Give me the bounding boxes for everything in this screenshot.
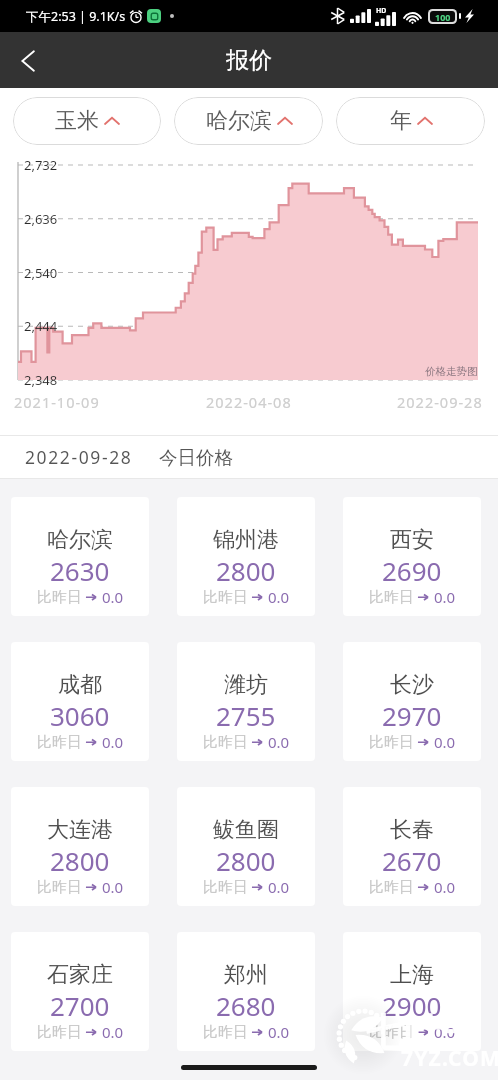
button[interactable]: 年 [336, 97, 485, 145]
staticText: 2700 [50, 988, 110, 1023]
button[interactable]: 成都 [11, 642, 149, 761]
staticText: 2680 [216, 988, 276, 1023]
staticText: 0.0 [268, 587, 290, 607]
staticText: 2,540 [24, 264, 58, 282]
staticText: 2690 [382, 553, 442, 588]
staticText: 2630 [50, 553, 110, 588]
staticText: 价格走势图 [425, 365, 478, 378]
button[interactable]: 西安 [343, 497, 481, 616]
staticText: 0.0 [434, 877, 456, 897]
staticText: 0.0 [434, 1022, 456, 1042]
staticText: 2670 [382, 843, 442, 878]
staticText: HD [376, 6, 387, 16]
button[interactable]: 哈尔滨 [174, 97, 323, 145]
staticText: 比昨日 [203, 878, 248, 897]
staticText: 哈尔滨 [47, 526, 113, 554]
button[interactable]: 石家庄 [11, 932, 149, 1051]
staticText: 0.0 [102, 732, 124, 752]
button[interactable]: 上海 [343, 932, 481, 1051]
staticText: 比昨日 [37, 878, 82, 897]
button[interactable]: 长春 [343, 787, 481, 906]
staticText: 2970 [382, 698, 442, 733]
staticText: 7YZ.COM [401, 1044, 498, 1073]
staticText: 比昨日 [37, 588, 82, 607]
staticText: 0.0 [268, 877, 290, 897]
staticText: 年 [390, 107, 412, 135]
staticText: 今日价格 [159, 446, 233, 469]
button[interactable]: 长沙 [343, 642, 481, 761]
staticText: 2022-09-28 [25, 445, 133, 469]
button[interactable]: 鲅鱼圈 [177, 787, 315, 906]
staticText: 比昨日 [369, 1023, 414, 1042]
staticText: 哈尔滨 [206, 107, 272, 135]
staticText: 比昨日 [203, 733, 248, 752]
button[interactable]: 玉米 [13, 97, 161, 145]
staticText: 比昨日 [203, 588, 248, 607]
staticText: 比昨日 [37, 733, 82, 752]
staticText: 报价 [226, 46, 272, 75]
staticText: 锦州港 [213, 526, 279, 554]
staticText: 2022-09-28 [397, 392, 483, 412]
staticText: 七叶子 [366, 1009, 480, 1057]
staticText: 西安 [390, 526, 434, 554]
staticText: 长春 [390, 816, 434, 844]
staticText: 2800 [50, 843, 110, 878]
staticText: 0.0 [434, 587, 456, 607]
staticText: 2755 [216, 698, 276, 733]
staticText: 比昨日 [37, 1023, 82, 1042]
staticText: 比昨日 [203, 1023, 248, 1042]
staticText: 郑州 [224, 961, 268, 989]
button[interactable]: 大连港 [11, 787, 149, 906]
staticText: 0.0 [102, 587, 124, 607]
staticText: 2022-04-08 [206, 392, 292, 412]
staticText: 0.0 [102, 1022, 124, 1042]
staticText: 2021-10-09 [14, 392, 100, 412]
button[interactable]: Back [0, 33, 55, 88]
staticText: 0.0 [268, 1022, 290, 1042]
staticText: 100 [435, 11, 451, 23]
staticText: 2900 [382, 988, 442, 1023]
staticText: 大连港 [47, 816, 113, 844]
staticText: 比昨日 [369, 733, 414, 752]
staticText: 下午2:53 | 9.1K/s [26, 8, 126, 25]
staticText: 潍坊 [224, 671, 268, 699]
staticText: 2,732 [24, 156, 58, 174]
staticText: 比昨日 [369, 588, 414, 607]
staticText: 3060 [50, 698, 110, 733]
staticText: 鲅鱼圈 [213, 816, 279, 844]
staticText: 长沙 [390, 671, 434, 699]
staticText: 玉米 [55, 107, 99, 135]
staticText: 2,636 [24, 210, 58, 228]
staticText: 成都 [58, 671, 102, 699]
button[interactable]: 锦州港 [177, 497, 315, 616]
staticText: 0.0 [434, 732, 456, 752]
staticText: 2800 [216, 843, 276, 878]
button[interactable]: 哈尔滨 [11, 497, 149, 616]
staticText: 0.0 [102, 877, 124, 897]
button[interactable]: 郑州 [177, 932, 315, 1051]
staticText: 2,348 [24, 371, 58, 389]
staticText: 2,444 [24, 317, 58, 335]
staticText: 0.0 [268, 732, 290, 752]
staticText: 2800 [216, 553, 276, 588]
staticText: 石家庄 [47, 961, 113, 989]
button[interactable]: 潍坊 [177, 642, 315, 761]
staticText: 比昨日 [369, 878, 414, 897]
staticText: 上海 [390, 961, 434, 989]
